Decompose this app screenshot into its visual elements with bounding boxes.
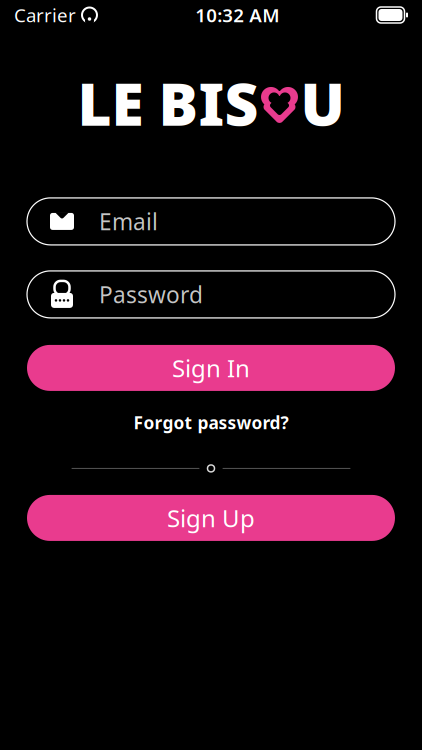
button[interactable]: Sign Up [27, 495, 395, 541]
staticText: 10:32 AM [195, 3, 279, 27]
staticText: Carrier [14, 3, 76, 27]
staticText: Email [99, 206, 158, 236]
staticText: Forgot password? [133, 411, 288, 434]
staticText: Sign In [172, 352, 250, 384]
button[interactable]: Forgot password? [123, 407, 298, 438]
staticText: U [300, 64, 344, 142]
staticText: Password [99, 279, 203, 309]
staticText: Sign Up [167, 502, 255, 534]
button[interactable]: Sign In [27, 345, 395, 391]
button[interactable]: Password [27, 271, 395, 318]
staticText: LE BIS [77, 64, 258, 142]
button[interactable]: Email [27, 198, 395, 245]
